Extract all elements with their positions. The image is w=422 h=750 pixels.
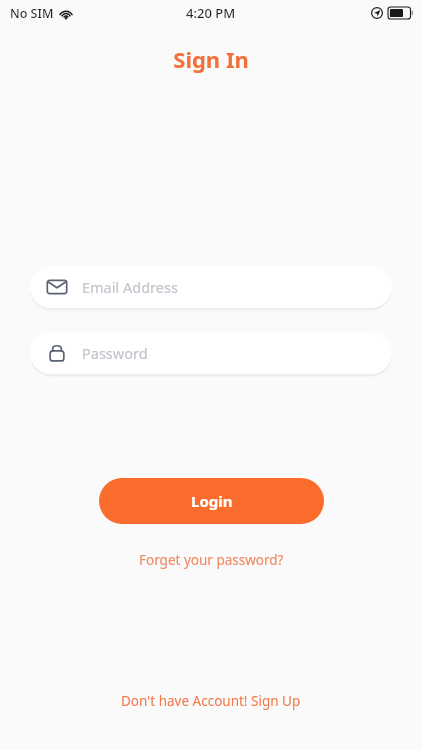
staticText: 4:20 PM	[186, 4, 236, 22]
staticText: Login	[191, 491, 233, 511]
staticText: No SIM	[10, 5, 54, 22]
button[interactable]: Forget your password?	[129, 547, 294, 573]
staticText: Sign In	[173, 44, 249, 74]
button[interactable]: Login	[99, 478, 324, 524]
button[interactable]: Don't have Account! Sign Up	[111, 688, 311, 714]
button[interactable]: Email Address	[30, 266, 392, 308]
staticText: Email Address	[82, 277, 178, 297]
button[interactable]: Password	[30, 332, 392, 374]
staticText: Password	[82, 343, 148, 363]
staticText: Don't have Account! Sign Up	[121, 692, 301, 710]
staticText: Forget your password?	[139, 551, 284, 569]
